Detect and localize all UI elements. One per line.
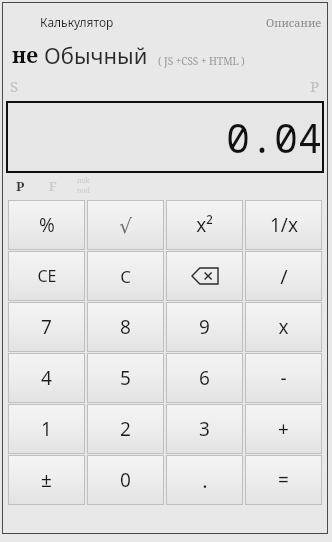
staticText: Калькулятор [40, 14, 114, 30]
staticText: 7 [41, 314, 52, 340]
staticText: x² [196, 212, 213, 238]
button[interactable]: ± [8, 455, 85, 505]
button[interactable]: % [8, 200, 85, 250]
staticText: F [49, 177, 57, 195]
staticText: 3 [199, 416, 210, 442]
staticText: 1 [41, 416, 52, 442]
button[interactable]: F [49, 177, 57, 195]
button[interactable]: Описание [266, 15, 322, 30]
staticText: = [278, 467, 289, 493]
button[interactable]: √ [87, 200, 164, 250]
button[interactable]: 0 [87, 455, 164, 505]
staticText: 1/x [270, 212, 298, 238]
staticText: 0 [120, 467, 131, 493]
button[interactable]: 6 [166, 353, 243, 403]
staticText: CE [37, 265, 57, 287]
button[interactable]: - [245, 353, 322, 403]
staticText: nok [77, 176, 90, 186]
button[interactable]: / [245, 251, 322, 301]
button[interactable]: Backspace [166, 251, 243, 301]
staticText: / [280, 263, 288, 290]
button[interactable]: 7 [8, 302, 85, 352]
staticText: 8 [120, 314, 131, 340]
button[interactable]: CE [8, 251, 85, 301]
staticText: Обычный [44, 40, 148, 70]
button[interactable]: P [16, 177, 25, 195]
staticText: ± [41, 467, 52, 493]
staticText: 4 [41, 365, 52, 391]
staticText: - [280, 365, 287, 391]
button[interactable]: 1 [8, 404, 85, 454]
button[interactable]: = [245, 455, 322, 505]
staticText: . [202, 467, 208, 494]
staticText: 5 [120, 365, 131, 391]
staticText: 0.04 [226, 110, 322, 164]
button[interactable]: . [166, 455, 243, 505]
staticText: S [10, 76, 19, 96]
button[interactable]: nok [77, 176, 90, 196]
staticText: C [120, 265, 131, 288]
button[interactable]: 5 [87, 353, 164, 403]
button[interactable]: C [87, 251, 164, 301]
staticText: 6 [199, 365, 210, 391]
button[interactable]: 3 [166, 404, 243, 454]
staticText: + [278, 416, 289, 442]
staticText: не [12, 41, 38, 70]
button[interactable]: 9 [166, 302, 243, 352]
staticText: % [39, 212, 55, 238]
button[interactable]: x [245, 302, 322, 352]
staticText: nod [77, 186, 90, 196]
staticText: x [278, 314, 289, 340]
button[interactable]: + [245, 404, 322, 454]
staticText: P [310, 76, 320, 96]
staticText: P [16, 177, 25, 195]
staticText: 9 [199, 314, 210, 340]
button[interactable]: 2 [87, 404, 164, 454]
staticText: Описание [266, 15, 322, 30]
button[interactable]: x² [166, 200, 243, 250]
staticText: ( JS +CSS + HTML ) [158, 54, 245, 68]
staticText: √ [119, 214, 132, 237]
staticText: 2 [120, 416, 131, 442]
button[interactable]: 4 [8, 353, 85, 403]
button[interactable]: 8 [87, 302, 164, 352]
button[interactable]: 1/x [245, 200, 322, 250]
